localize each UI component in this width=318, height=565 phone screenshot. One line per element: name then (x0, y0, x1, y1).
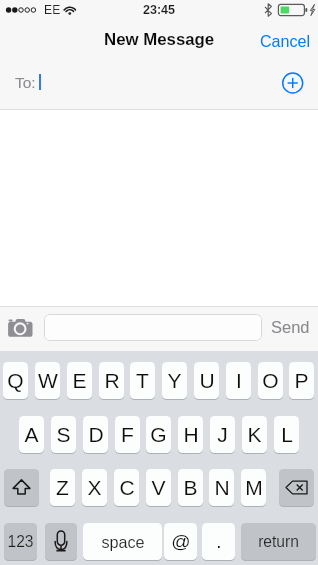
staticText: return (258, 533, 299, 550)
button[interactable]: K (242, 416, 267, 453)
staticText: V (151, 476, 166, 499)
button[interactable]: G (146, 416, 171, 453)
button[interactable]: @ (164, 523, 197, 560)
button[interactable]: L (274, 416, 299, 453)
staticText: U (199, 369, 215, 392)
button[interactable]: N (209, 469, 234, 506)
staticText: A (24, 423, 39, 446)
staticText: Q (7, 369, 24, 392)
button[interactable]: return (241, 523, 316, 560)
button[interactable]: M (241, 469, 266, 506)
button[interactable]: Backspace (279, 469, 314, 506)
staticText: 123 (7, 533, 34, 550)
staticText: Z (56, 476, 69, 499)
staticText: To: (15, 74, 36, 91)
staticText: G (150, 423, 167, 446)
button[interactable]: T (130, 362, 155, 399)
staticText: 23:45 (143, 3, 175, 17)
staticText: New Message (104, 30, 215, 49)
button[interactable]: R (99, 362, 124, 399)
staticText: K (247, 423, 262, 446)
button[interactable]: Take photo (4, 314, 37, 347)
button[interactable]: Dictation (45, 523, 77, 560)
button[interactable] (44, 314, 262, 341)
staticText: O (262, 369, 279, 392)
button[interactable]: J (210, 416, 235, 453)
button[interactable]: X (82, 469, 107, 506)
button[interactable]: F (115, 416, 140, 453)
button[interactable]: I (226, 362, 251, 399)
button[interactable]: Cancel (248, 23, 318, 59)
button[interactable]: B (178, 469, 203, 506)
button[interactable]: A (19, 416, 44, 453)
button[interactable]: E (67, 362, 92, 399)
staticText: Cancel (260, 32, 311, 50)
staticText: P (294, 369, 309, 392)
staticText: . (216, 531, 222, 552)
button[interactable]: W (35, 362, 60, 399)
staticText: B (183, 476, 198, 499)
staticText: J (217, 423, 228, 446)
button[interactable]: P (289, 362, 314, 399)
staticText: F (121, 423, 134, 446)
button[interactable]: H (178, 416, 203, 453)
button[interactable]: C (114, 469, 139, 506)
staticText: EE (44, 3, 61, 17)
button[interactable]: O (258, 362, 283, 399)
button[interactable]: S (51, 416, 76, 453)
button[interactable]: D (83, 416, 108, 453)
button[interactable]: Send (265, 312, 316, 342)
button[interactable]: U (194, 362, 219, 399)
staticText: space (101, 533, 145, 551)
staticText: D (88, 423, 104, 446)
button[interactable]: . (202, 523, 235, 560)
staticText: T (136, 369, 149, 392)
button[interactable]: space (83, 523, 162, 560)
staticText: C (119, 476, 135, 499)
staticText: W (38, 369, 58, 392)
button[interactable]: Y (162, 362, 187, 399)
button[interactable]: 123 (4, 523, 37, 560)
button[interactable]: Shift (4, 469, 39, 506)
button[interactable]: Z (50, 469, 75, 506)
staticText: R (104, 369, 120, 392)
button[interactable]: Add contact (278, 68, 310, 100)
staticText: N (214, 476, 230, 499)
staticText: M (245, 476, 263, 499)
staticText: Send (271, 318, 310, 336)
staticText: E (72, 369, 87, 392)
button[interactable]: Q (3, 362, 28, 399)
staticText: L (281, 423, 293, 446)
staticText: Y (167, 369, 182, 392)
button[interactable]: V (146, 469, 171, 506)
staticText: X (87, 476, 102, 499)
staticText: S (56, 423, 71, 446)
staticText: @ (171, 531, 191, 552)
staticText: I (236, 369, 242, 392)
staticText: H (183, 423, 199, 446)
